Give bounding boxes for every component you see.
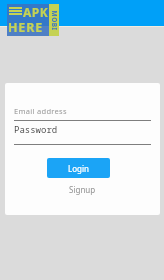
staticText: Password	[14, 123, 58, 135]
button[interactable]: Login	[47, 158, 110, 178]
staticText: Email address	[14, 106, 67, 116]
staticText: Signup	[69, 184, 96, 195]
button[interactable]: Signup	[5, 183, 160, 195]
staticText: MOBI	[49, 10, 58, 31]
staticText: Login	[68, 163, 89, 174]
staticText: APK	[23, 4, 49, 20]
staticText: HERE	[8, 19, 43, 36]
